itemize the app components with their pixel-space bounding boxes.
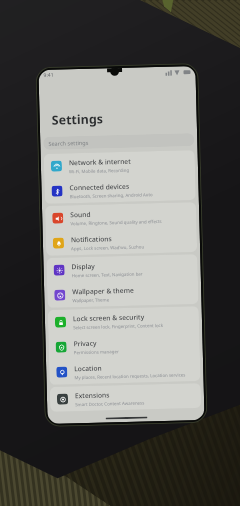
staticText: Smart Doctor, Content Awareness — [75, 399, 145, 407]
button[interactable]: Connected devices — [44, 175, 196, 204]
staticText: Extensions — [75, 390, 110, 400]
staticText: Search settings — [48, 139, 89, 148]
button[interactable]: Extensions — [50, 383, 201, 412]
staticText: Privacy — [73, 339, 97, 348]
button[interactable]: Wallpaper & theme — [47, 279, 199, 308]
staticText: Settings — [51, 110, 104, 129]
staticText: Location — [74, 363, 102, 373]
staticText: Lock screen & security — [73, 312, 145, 323]
button[interactable]: Sound — [45, 202, 197, 231]
staticText: Network & internet — [69, 157, 131, 167]
button[interactable]: Search settings — [43, 133, 194, 150]
staticText: Home screen, Text, Navigation bar — [72, 270, 143, 278]
staticText: Permissions manager — [74, 348, 119, 355]
staticText: Display — [71, 262, 96, 271]
button[interactable]: Lock screen & security — [48, 306, 199, 335]
staticText: 9:41 — [43, 72, 54, 79]
staticText: Wallpaper, Theme — [72, 296, 109, 303]
staticText: Connected devices — [69, 182, 130, 192]
staticText: Apps, Lock screen, Wad'wu, Suzhou — [71, 243, 144, 251]
staticText: Wi-Fi, Mobile data, Recording — [69, 167, 130, 174]
button[interactable]: Location — [49, 356, 201, 385]
staticText: Volume, Ringtone, Sound quality and effe… — [70, 218, 162, 226]
staticText: Notifications — [71, 234, 112, 244]
staticText: Select screen lock, Fingerprint, Content… — [73, 322, 163, 330]
button[interactable]: Display — [46, 254, 198, 283]
button[interactable]: Network & internet — [44, 150, 195, 179]
staticText: Wallpaper & theme — [72, 286, 134, 296]
staticText: Bluetooth, Screen sharing, Android Auto — [70, 191, 154, 199]
button[interactable]: Notifications — [46, 227, 197, 256]
staticText: My places, Recent location requests, Loc… — [74, 371, 185, 380]
staticText: Sound — [70, 210, 91, 219]
button[interactable]: Privacy — [48, 331, 200, 360]
